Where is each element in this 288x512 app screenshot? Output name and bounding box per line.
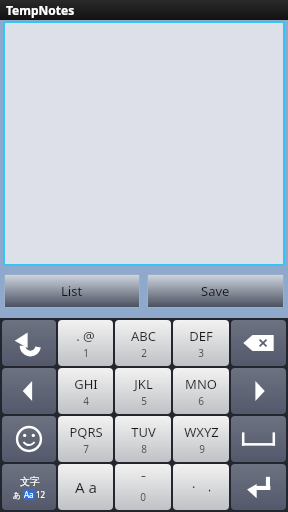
button[interactable]: Save <box>148 275 283 307</box>
staticText: 3 <box>198 346 204 360</box>
staticText: JKL <box>134 375 153 393</box>
button[interactable]: PQRS <box>58 416 113 462</box>
staticText: 7 <box>83 442 89 456</box>
button[interactable]: TUV <box>115 416 171 462</box>
staticText: ABC <box>131 327 156 345</box>
staticText: ， <box>204 480 215 494</box>
staticText: TempNotes <box>6 2 75 18</box>
button[interactable]: ABC <box>115 320 171 366</box>
staticText: 9 <box>199 442 205 456</box>
staticText: List <box>61 282 83 300</box>
staticText: 文字 <box>20 475 40 488</box>
staticText: 8 <box>141 442 147 456</box>
button[interactable]: Space <box>231 416 286 462</box>
button[interactable]: JKL <box>115 368 171 414</box>
button[interactable]: 文字 <box>2 464 56 510</box>
staticText: ˉ <box>141 471 146 489</box>
staticText: WXYZ <box>184 423 219 441</box>
staticText: Save <box>201 282 230 300</box>
staticText: 4 <box>83 394 89 408</box>
button[interactable]: DEF <box>173 320 229 366</box>
staticText: TUV <box>131 423 156 441</box>
staticText: MNO <box>185 375 217 393</box>
button[interactable]: A a <box>58 464 113 510</box>
button[interactable]: Backspace <box>231 320 286 366</box>
staticText: あ <box>13 490 22 500</box>
staticText: PQRS <box>69 423 103 441</box>
button[interactable]: Enter <box>231 464 286 510</box>
staticText: 12 <box>36 489 46 500</box>
button[interactable]: Right <box>231 368 286 414</box>
staticText: 0 <box>140 490 146 504</box>
staticText: A a <box>75 477 97 497</box>
button[interactable]: . @ <box>58 320 113 366</box>
button[interactable]: Undo <box>2 320 56 366</box>
button[interactable]: ・ <box>173 464 229 510</box>
button[interactable]: MNO <box>173 368 229 414</box>
staticText: Aa <box>24 489 34 500</box>
staticText: 1 <box>83 346 89 360</box>
staticText: GHI <box>74 375 98 393</box>
staticText: 5 <box>141 394 147 408</box>
button[interactable]: List <box>5 275 139 307</box>
button[interactable]: Left <box>2 368 56 414</box>
button[interactable]: GHI <box>58 368 113 414</box>
staticText: DEF <box>189 327 213 345</box>
staticText: . @ <box>76 327 95 345</box>
staticText: ・ <box>188 480 199 494</box>
button[interactable]: ˉ <box>115 464 171 510</box>
button[interactable]: Emoji <box>2 416 56 462</box>
staticText: 2 <box>141 346 147 360</box>
staticText: 6 <box>198 394 204 408</box>
button[interactable]: WXYZ <box>173 416 229 462</box>
